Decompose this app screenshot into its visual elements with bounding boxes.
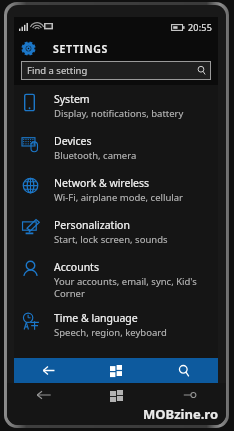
button[interactable]: Back bbox=[14, 358, 82, 383]
staticText: Time & language bbox=[54, 311, 138, 325]
staticText: Devices bbox=[54, 134, 92, 148]
staticText: Personalization bbox=[54, 218, 130, 232]
staticText: Wi-Fi, airplane mode, cellular bbox=[54, 191, 184, 204]
button[interactable]: Start bbox=[82, 358, 150, 383]
button[interactable]: Search bbox=[150, 358, 218, 383]
button[interactable]: Time & language bbox=[14, 304, 218, 346]
button[interactable]: Personalization bbox=[14, 211, 218, 253]
button[interactable]: Devices bbox=[14, 127, 218, 169]
button[interactable]: Network & wireless bbox=[14, 169, 218, 211]
button[interactable]: System bbox=[14, 85, 218, 127]
staticText: Display, notifications, battery bbox=[54, 107, 184, 120]
staticText: MOBzine.ro bbox=[143, 405, 219, 423]
button[interactable]: Find a setting bbox=[21, 61, 211, 80]
staticText: Network & wireless bbox=[54, 176, 150, 190]
staticText: Speech, region, keyboard bbox=[54, 326, 167, 339]
staticText: Find a setting bbox=[27, 64, 88, 77]
staticText: SETTINGS bbox=[53, 42, 109, 56]
button[interactable]: Accounts bbox=[14, 253, 218, 304]
staticText: Accounts bbox=[54, 260, 99, 274]
staticText: Your accounts, email, sync, Kid's Corner bbox=[54, 275, 197, 300]
staticText: Bluetooth, camera bbox=[54, 149, 137, 162]
staticText: Start, lock screen, sounds bbox=[54, 233, 168, 246]
staticText: 20:55 bbox=[188, 21, 213, 33]
staticText: System bbox=[54, 92, 90, 106]
